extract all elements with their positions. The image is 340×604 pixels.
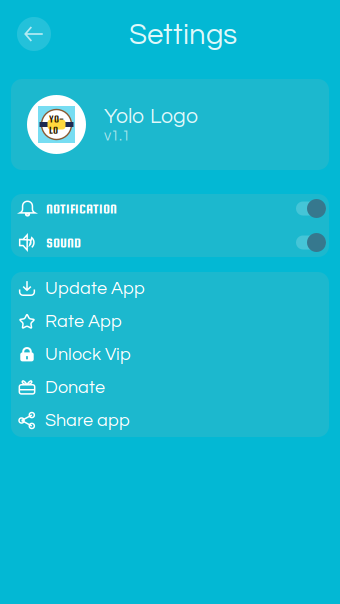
- staticText: YOLO: [49, 113, 64, 136]
- staticText: Unlock Vip: [45, 345, 131, 364]
- staticText: SOUND: [46, 235, 81, 250]
- staticText: Donate: [45, 378, 105, 397]
- button[interactable]: Donate: [11, 371, 329, 404]
- staticText: Rate App: [45, 312, 122, 331]
- staticText: Yolo Logo: [104, 105, 198, 127]
- staticText: v1.1: [104, 128, 130, 143]
- button[interactable]: NOTIFICATION: [11, 191, 329, 225]
- staticText: Share app: [45, 411, 130, 430]
- button[interactable]: Back: [12, 12, 56, 56]
- button[interactable]: SOUND: [11, 225, 329, 259]
- staticText: NOTIFICATION: [46, 201, 117, 216]
- button[interactable]: Update App: [11, 272, 329, 305]
- button[interactable]: Share app: [11, 404, 329, 437]
- button[interactable]: Unlock Vip: [11, 338, 329, 371]
- staticText: Update App: [45, 279, 145, 298]
- button[interactable]: Rate App: [11, 305, 329, 338]
- staticText: Settings: [129, 20, 237, 50]
